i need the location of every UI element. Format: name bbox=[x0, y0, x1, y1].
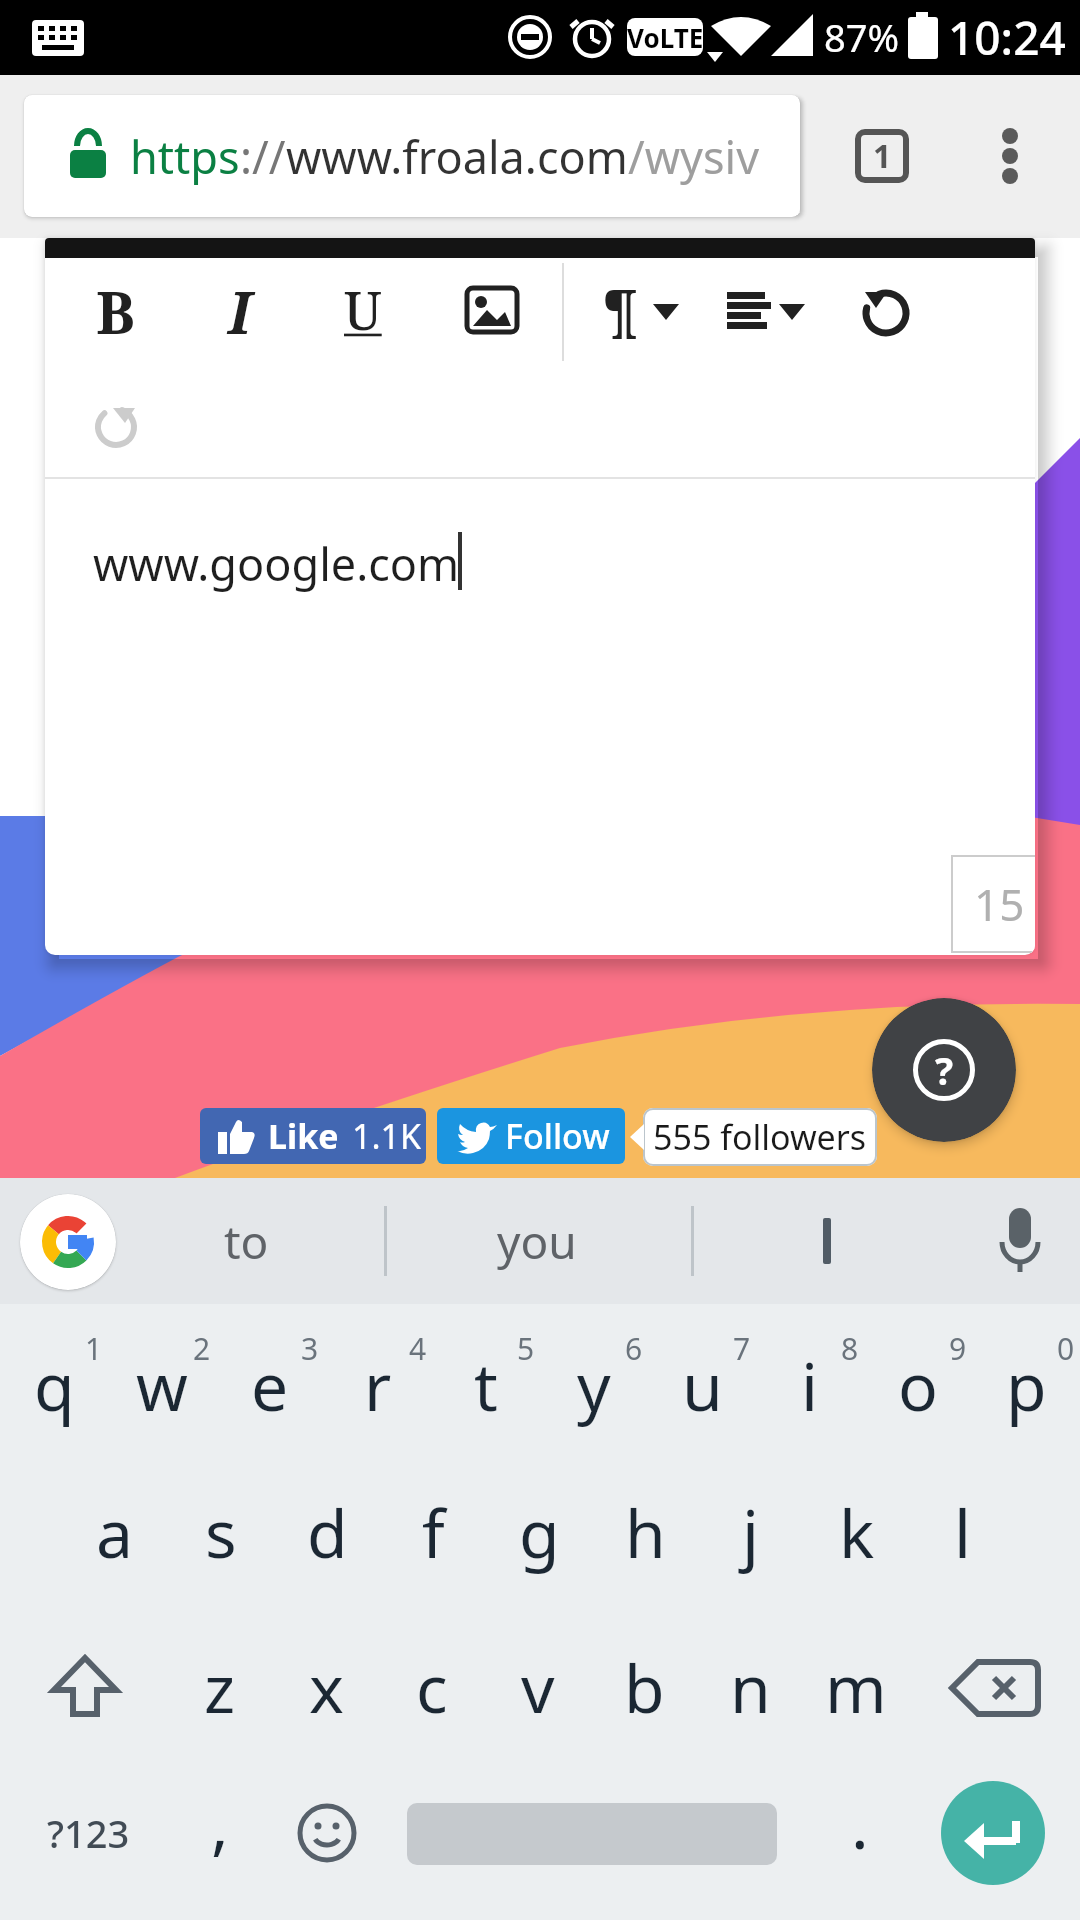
staticText: VoLTE bbox=[627, 20, 704, 55]
staticText: f bbox=[422, 1487, 445, 1577]
staticText: c bbox=[416, 1642, 448, 1732]
button[interactable]: c bbox=[380, 1615, 484, 1759]
button[interactable]: w bbox=[110, 1313, 214, 1457]
button[interactable]: i bbox=[758, 1313, 862, 1457]
staticText: . bbox=[851, 1778, 869, 1868]
button[interactable]: e bbox=[218, 1313, 322, 1457]
staticText: ? bbox=[935, 1044, 954, 1096]
staticText: w bbox=[136, 1340, 188, 1430]
button[interactable]: m bbox=[804, 1615, 908, 1759]
staticText: Follow bbox=[505, 1113, 610, 1159]
button[interactable] bbox=[727, 292, 771, 330]
button[interactable]: l bbox=[911, 1460, 1015, 1604]
staticText: 3 bbox=[301, 1328, 319, 1368]
staticText: 555 followers bbox=[653, 1114, 867, 1160]
staticText: g bbox=[519, 1487, 560, 1577]
button[interactable] bbox=[95, 406, 137, 446]
staticText: n bbox=[730, 1642, 771, 1732]
staticText: 1.1K bbox=[352, 1113, 422, 1159]
staticText: j bbox=[742, 1487, 760, 1577]
button[interactable]: I bbox=[140, 238, 340, 411]
staticText: 7 bbox=[733, 1328, 751, 1368]
staticText: l bbox=[954, 1487, 972, 1577]
button[interactable]: x bbox=[274, 1615, 378, 1759]
button[interactable]: g bbox=[487, 1460, 591, 1604]
staticText: www.froala.com bbox=[286, 126, 628, 187]
button[interactable]: ?123 bbox=[30, 1803, 146, 1863]
button[interactable]: v bbox=[486, 1615, 590, 1759]
button[interactable]: 555 followers bbox=[643, 1108, 877, 1166]
staticText: q bbox=[34, 1340, 75, 1430]
button[interactable] bbox=[863, 290, 909, 334]
staticText: e bbox=[251, 1340, 289, 1430]
button[interactable]: p bbox=[974, 1313, 1078, 1457]
button[interactable]: to bbox=[126, 1198, 366, 1284]
button[interactable] bbox=[467, 288, 517, 334]
staticText: B bbox=[96, 272, 135, 351]
staticText: 9 bbox=[949, 1328, 967, 1368]
staticText: y bbox=[577, 1340, 611, 1430]
staticText: h bbox=[625, 1487, 666, 1577]
staticText: 15 bbox=[974, 874, 1025, 934]
staticText: 0 bbox=[1057, 1328, 1075, 1368]
button[interactable] bbox=[707, 1198, 947, 1284]
button[interactable]: z bbox=[168, 1615, 272, 1759]
staticText: 1 bbox=[85, 1328, 103, 1368]
button[interactable]: 1 bbox=[855, 129, 909, 183]
staticText: U bbox=[344, 274, 382, 345]
button[interactable]: you bbox=[417, 1198, 657, 1284]
staticText: 4 bbox=[409, 1328, 427, 1368]
staticText: v bbox=[521, 1642, 555, 1732]
staticText: o bbox=[898, 1340, 938, 1430]
button[interactable]: t bbox=[434, 1313, 538, 1457]
button[interactable]: n bbox=[698, 1615, 802, 1759]
button[interactable]: o bbox=[866, 1313, 970, 1457]
button[interactable] bbox=[950, 1660, 1040, 1716]
staticText: a bbox=[96, 1487, 134, 1577]
staticText: www.google.com bbox=[93, 533, 460, 594]
button[interactable]: . bbox=[808, 1751, 912, 1895]
staticText: z bbox=[204, 1642, 236, 1732]
button[interactable] bbox=[20, 1194, 116, 1290]
button[interactable] bbox=[941, 1781, 1045, 1885]
staticText: u bbox=[682, 1340, 723, 1430]
staticText: d bbox=[307, 1487, 348, 1577]
button[interactable] bbox=[50, 1656, 120, 1718]
staticText: 6 bbox=[625, 1328, 643, 1368]
button[interactable]: Follow bbox=[437, 1108, 625, 1164]
button[interactable]: k bbox=[805, 1460, 909, 1604]
button[interactable]: U bbox=[263, 238, 463, 409]
button[interactable]: f bbox=[381, 1460, 485, 1604]
staticText: you bbox=[497, 1210, 577, 1273]
button[interactable]: q bbox=[2, 1313, 106, 1457]
staticText: 1 bbox=[873, 134, 892, 178]
staticText: ¶ bbox=[603, 273, 639, 349]
button[interactable]: s bbox=[169, 1460, 273, 1604]
button[interactable] bbox=[990, 115, 1030, 195]
button[interactable]: j bbox=[699, 1460, 803, 1604]
staticText: x bbox=[309, 1642, 344, 1732]
button[interactable]: b bbox=[592, 1615, 696, 1759]
staticText: s bbox=[205, 1487, 237, 1577]
button[interactable]: Like bbox=[200, 1108, 426, 1164]
staticText: I bbox=[228, 272, 252, 351]
button[interactable]: h bbox=[593, 1460, 697, 1604]
staticText: t bbox=[474, 1340, 498, 1430]
staticText: :// bbox=[240, 126, 286, 187]
staticText: 87% bbox=[824, 11, 900, 63]
button[interactable] bbox=[297, 1803, 357, 1863]
button[interactable]: B bbox=[45, 238, 215, 411]
button[interactable]: https bbox=[24, 95, 800, 217]
button[interactable]: ? bbox=[872, 998, 1016, 1142]
button[interactable]: u bbox=[650, 1313, 754, 1457]
button[interactable]: d bbox=[275, 1460, 379, 1604]
staticText: 10:24 bbox=[948, 6, 1066, 69]
button[interactable]: , bbox=[168, 1751, 272, 1895]
button[interactable]: ¶ bbox=[521, 238, 721, 411]
button[interactable]: a bbox=[63, 1460, 167, 1604]
button[interactable] bbox=[995, 1208, 1045, 1274]
button[interactable]: r bbox=[326, 1313, 430, 1457]
button[interactable]: y bbox=[542, 1313, 646, 1457]
staticText: , bbox=[211, 1778, 229, 1868]
